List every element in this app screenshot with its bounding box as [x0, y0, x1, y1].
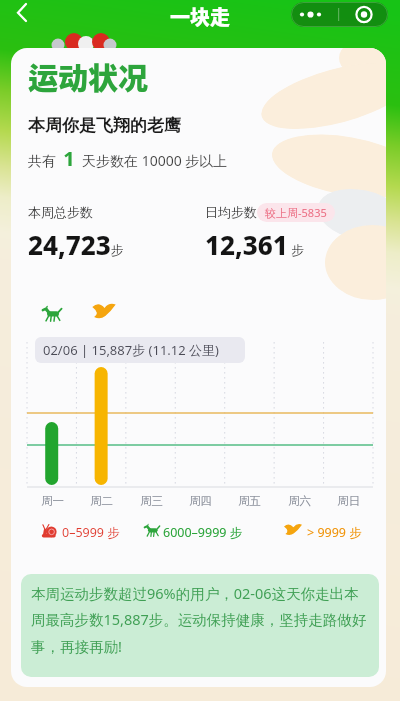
- staticText: 运动状况: [28, 54, 148, 97]
- staticText: > 9999 步: [307, 524, 362, 541]
- staticText: 较上周-5835: [265, 205, 327, 220]
- staticText: 12,361 步: [205, 227, 305, 262]
- staticText: 周三: [140, 494, 163, 508]
- staticText: 本周总步数: [28, 204, 93, 220]
- button[interactable]: [291, 2, 388, 27]
- staticText: 02/06 | 15,887步 (11.12 公里): [43, 341, 219, 359]
- staticText: 24,723步: [28, 227, 124, 262]
- staticText: 共有 1 天步数在 10000 步以上: [28, 145, 228, 172]
- staticText: 周四: [189, 494, 212, 508]
- staticText: 0–5999 步: [62, 524, 120, 541]
- staticText: 一块走: [170, 2, 230, 31]
- staticText: 周二: [90, 494, 113, 508]
- staticText: 周日: [337, 494, 360, 508]
- staticText: 日均步数: [205, 204, 257, 220]
- staticText: 本周运动步数超过96%的用户，02-06这天你走出本 周最高步数15,887步。…: [31, 583, 367, 657]
- staticText: 本周你是飞翔的老鹰: [28, 115, 181, 136]
- staticText: 周一: [41, 494, 64, 508]
- staticText: 6000–9999 步: [163, 524, 243, 541]
- staticText: 周六: [288, 494, 311, 508]
- button[interactable]: [12, 0, 32, 28]
- staticText: 周五: [238, 494, 261, 508]
